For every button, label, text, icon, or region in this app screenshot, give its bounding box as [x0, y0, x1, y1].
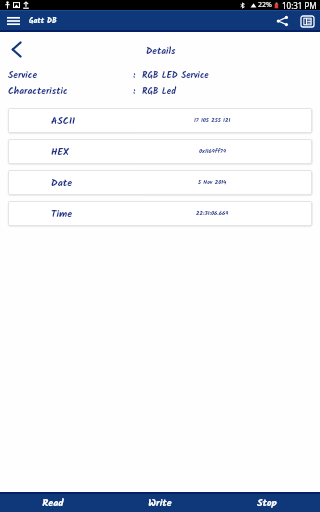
staticText: 22%: [258, 0, 272, 10]
staticText: 17 105 255 121: [194, 116, 231, 126]
button[interactable]: Write: [106, 492, 213, 512]
staticText: 10:31 PM: [282, 0, 317, 10]
staticText: 22:31:06.669: [196, 209, 229, 219]
staticText: :: [133, 84, 136, 96]
staticText: ASCII: [51, 113, 76, 129]
staticText: Details: [146, 44, 176, 59]
button[interactable]: Read: [0, 492, 106, 512]
staticText: Service: [8, 68, 38, 80]
staticText: Time: [51, 206, 73, 222]
button[interactable]: ASCII: [8, 108, 312, 133]
button[interactable]: Time: [8, 201, 312, 226]
staticText: RGB Led: [142, 84, 177, 96]
button[interactable]: HEX: [8, 139, 312, 164]
staticText: HEX: [51, 144, 69, 160]
staticText: 0x1169ff79: [199, 147, 226, 157]
button[interactable]: Back: [5, 38, 27, 60]
staticText: Write: [148, 495, 172, 511]
staticText: Read: [42, 495, 64, 511]
staticText: Gatt DB: [29, 15, 57, 27]
staticText: Stop: [257, 495, 277, 511]
button[interactable]: Log: [296, 10, 318, 32]
staticText: RGB LED Service: [142, 68, 209, 80]
staticText: :: [133, 68, 136, 80]
staticText: 5 Nov 2014: [198, 178, 227, 188]
button[interactable]: Stop: [213, 492, 320, 512]
button[interactable]: Date: [8, 170, 312, 195]
button[interactable]: Menu: [2, 10, 24, 32]
staticText: Characteristic: [8, 84, 68, 96]
staticText: Date: [51, 175, 73, 191]
button[interactable]: Share: [271, 10, 293, 32]
